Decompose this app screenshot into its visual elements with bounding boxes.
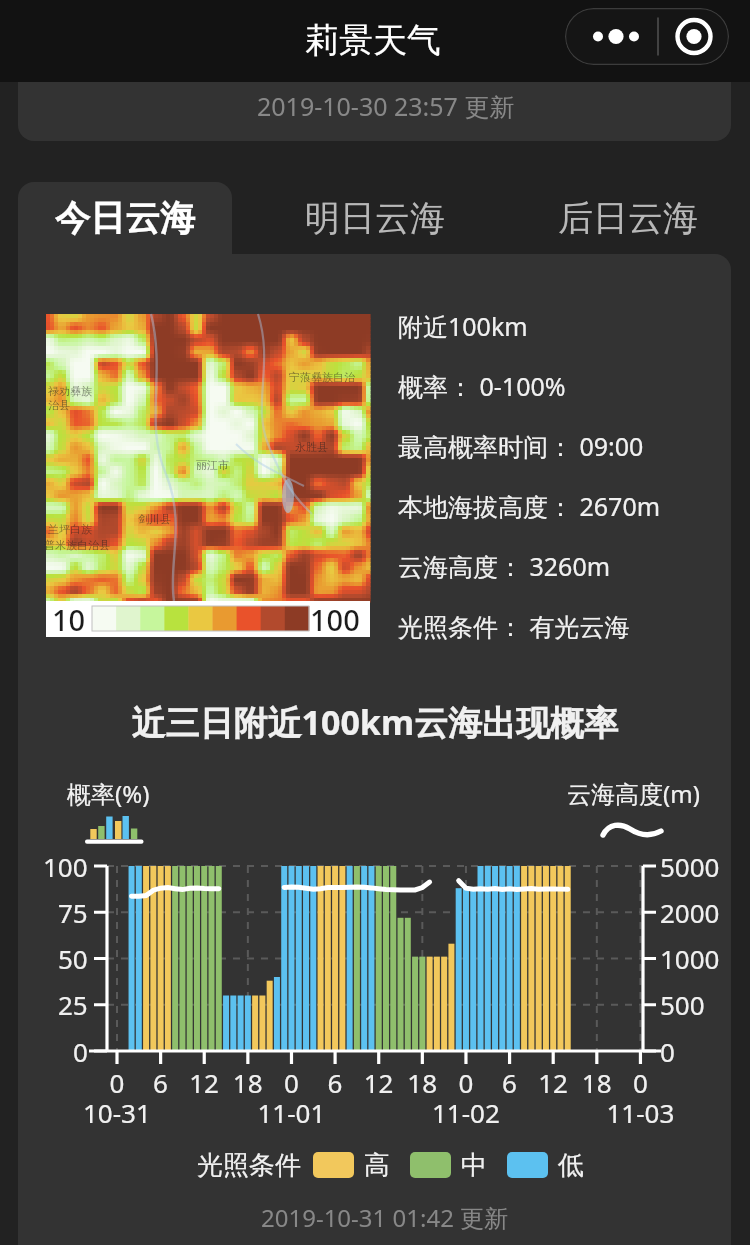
staticText: 明日云海 (305, 196, 445, 240)
staticText: 莉景天气 (305, 19, 441, 62)
staticText: 后日云海 (558, 196, 698, 240)
button[interactable]: 今日云海 (18, 182, 232, 254)
button[interactable]: 明日云海 (249, 182, 500, 254)
button[interactable]: More options and close (565, 8, 729, 65)
staticText: 今日云海 (55, 196, 195, 240)
staticText: 2019-10-30 23:57 更新 (257, 89, 515, 123)
button[interactable]: 后日云海 (503, 182, 750, 254)
